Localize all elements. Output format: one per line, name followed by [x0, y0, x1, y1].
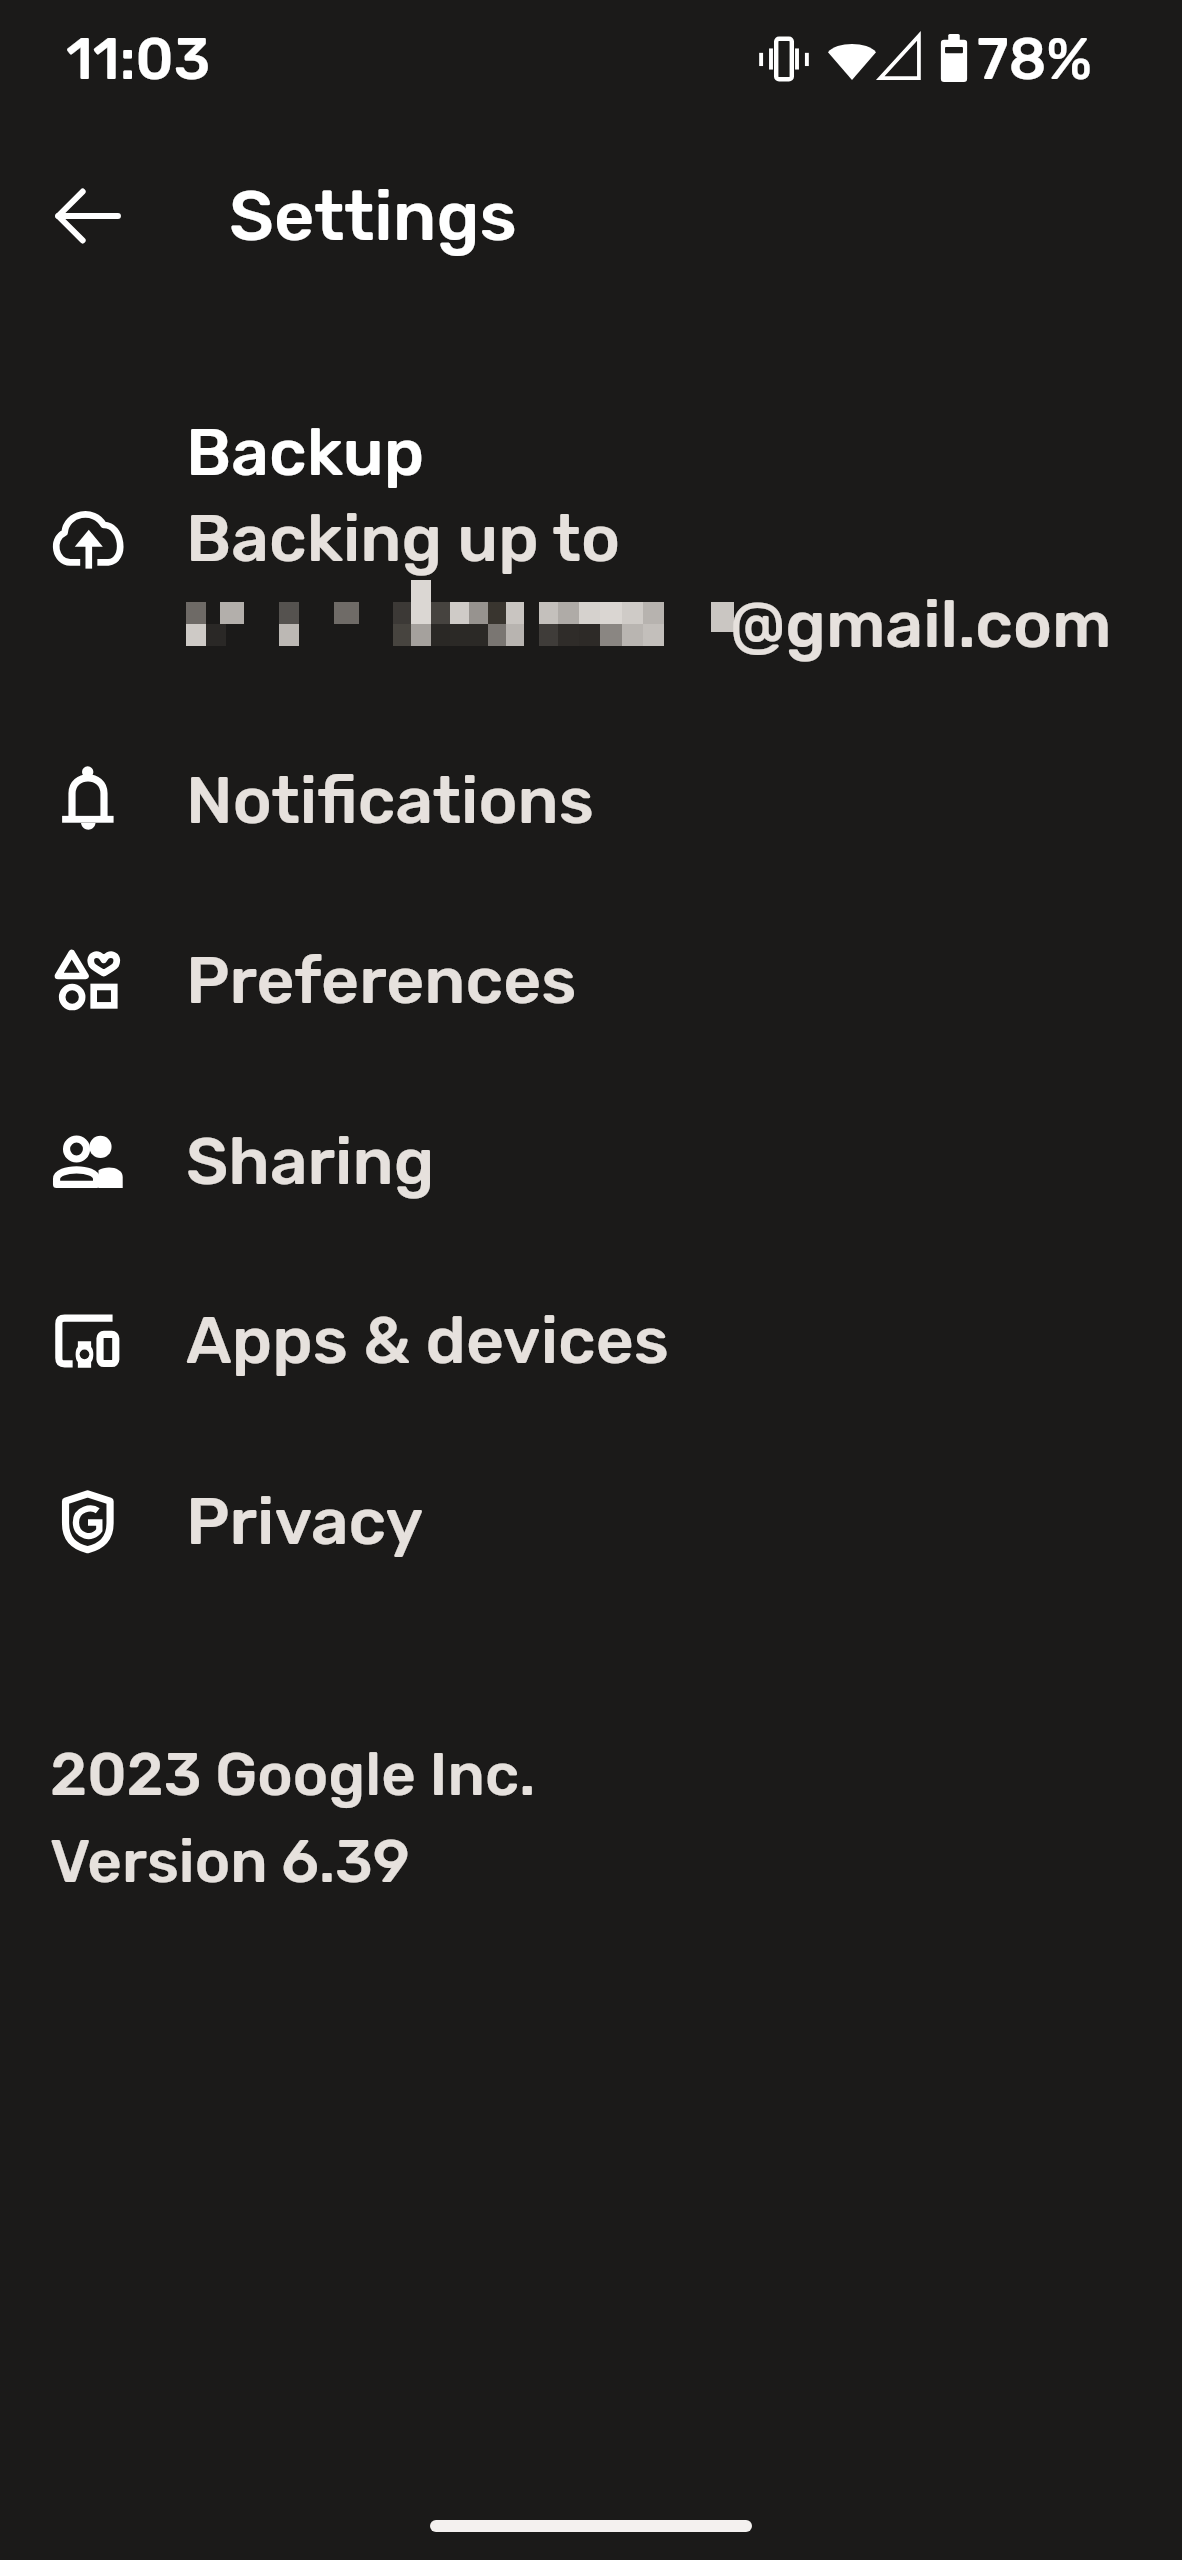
staticText: Settings — [229, 175, 517, 258]
staticText: @gmail.com — [730, 585, 1112, 663]
staticText: Backup — [186, 413, 425, 491]
staticText: 11:03 — [66, 25, 211, 94]
staticText: Privacy — [186, 1482, 424, 1560]
button[interactable]: Privacy — [0, 1429, 1182, 1609]
button[interactable]: Backup — [0, 390, 1182, 680]
staticText: Notifications — [186, 761, 594, 839]
staticText: Sharing — [186, 1122, 435, 1200]
staticText: 2023 Google Inc. — [50, 1739, 536, 1810]
staticText: Preferences — [186, 941, 577, 1019]
button[interactable]: Preferences — [0, 888, 1182, 1068]
button[interactable]: Back — [15, 144, 159, 288]
staticText: Apps & devices — [186, 1301, 669, 1379]
button[interactable]: Apps & devices — [0, 1248, 1182, 1428]
staticText: Version 6.39 — [50, 1826, 410, 1897]
staticText: 78% — [977, 25, 1093, 94]
button[interactable]: Sharing — [0, 1069, 1182, 1249]
button[interactable]: Notifications — [0, 708, 1182, 888]
staticText: Backing up to — [186, 499, 620, 577]
